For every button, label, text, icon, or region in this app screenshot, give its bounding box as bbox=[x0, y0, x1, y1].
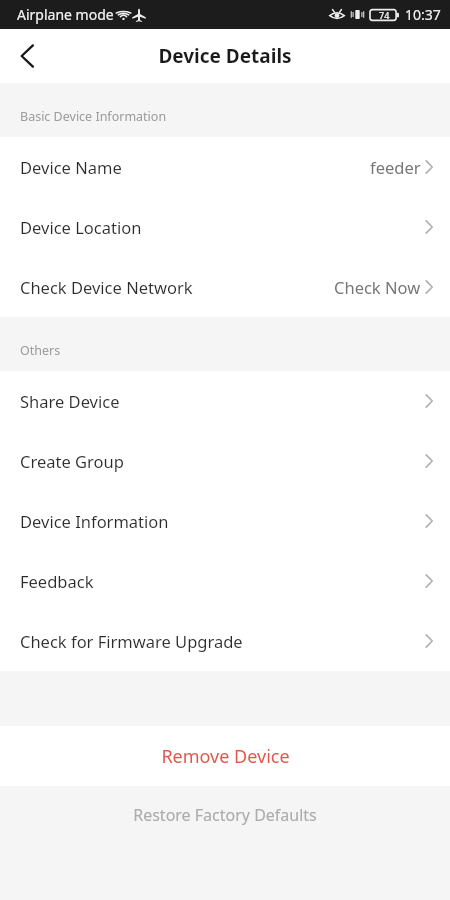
button[interactable]: Check for Firmware Upgrade bbox=[0, 611, 450, 671]
button[interactable]: Device Information bbox=[0, 491, 450, 551]
staticText: Device Location bbox=[20, 216, 142, 238]
staticText: Check for Firmware Upgrade bbox=[20, 630, 243, 652]
staticText: Device Details bbox=[158, 43, 292, 69]
button[interactable]: Restore Factory Defaults bbox=[0, 786, 450, 844]
staticText: Basic Device Information bbox=[20, 108, 167, 125]
staticText: 10:37 bbox=[405, 5, 441, 24]
staticText: Remove Device bbox=[161, 744, 290, 769]
staticText: Device Name bbox=[20, 156, 122, 178]
button[interactable]: Check Device Network bbox=[0, 257, 450, 317]
button[interactable]: Create Group bbox=[0, 431, 450, 491]
button[interactable]: Device Location bbox=[0, 197, 450, 257]
button[interactable]: Remove Device bbox=[0, 726, 450, 786]
staticText: feeder bbox=[370, 156, 421, 178]
staticText: Check Device Network bbox=[20, 276, 193, 298]
staticText: Device Information bbox=[20, 510, 169, 532]
staticText: Feedback bbox=[20, 570, 94, 592]
staticText: 74 bbox=[379, 9, 390, 21]
staticText: Others bbox=[20, 342, 61, 359]
staticText: Airplane mode bbox=[17, 5, 114, 24]
button[interactable]: Share Device bbox=[0, 371, 450, 431]
staticText: Check Now bbox=[334, 276, 421, 298]
button[interactable]: Device Name bbox=[0, 137, 450, 197]
staticText: Restore Factory Defaults bbox=[133, 804, 317, 826]
staticText: Share Device bbox=[20, 390, 120, 412]
button[interactable]: Back bbox=[0, 29, 54, 83]
staticText: Create Group bbox=[20, 450, 124, 472]
button[interactable]: Feedback bbox=[0, 551, 450, 611]
